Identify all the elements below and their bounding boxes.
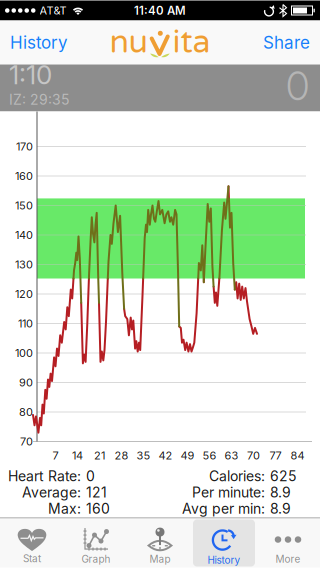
staticText: 121 xyxy=(86,485,107,500)
staticText: Share xyxy=(263,33,310,52)
button[interactable]: More xyxy=(256,518,320,567)
staticText: Max: xyxy=(48,501,81,516)
staticText: 90 xyxy=(19,376,33,388)
staticText: History xyxy=(10,33,68,52)
staticText: 150 xyxy=(15,199,33,211)
staticText: 8.9 xyxy=(270,501,291,516)
staticText: 70 xyxy=(247,449,260,461)
staticText: ita xyxy=(172,23,210,62)
staticText: 35 xyxy=(136,449,150,461)
staticText: 110 xyxy=(18,317,33,329)
staticText: Heart Rate: xyxy=(8,469,81,484)
staticText: 0 xyxy=(86,469,95,484)
button[interactable]: Share xyxy=(263,33,320,52)
staticText: Map xyxy=(149,554,170,564)
staticText: 170 xyxy=(16,140,33,152)
button[interactable]: Map xyxy=(128,518,192,567)
staticText: 140 xyxy=(15,229,33,241)
staticText: 56 xyxy=(202,449,216,461)
staticText: AT&T xyxy=(39,4,66,16)
button[interactable]: History xyxy=(0,33,68,52)
staticText: nu xyxy=(109,23,147,62)
staticText: 7 xyxy=(52,449,58,461)
staticText: 130 xyxy=(15,258,33,270)
staticText: Calories: xyxy=(209,469,265,484)
staticText: Per minute: xyxy=(192,485,265,500)
staticText: 21 xyxy=(94,449,105,461)
staticText: 63 xyxy=(224,449,238,461)
staticText: 160 xyxy=(86,501,110,516)
staticText: 84 xyxy=(290,449,304,461)
staticText: 8.9 xyxy=(270,485,291,500)
staticText: Avg per min: xyxy=(182,501,265,516)
staticText: Graph xyxy=(81,554,110,564)
staticText: More xyxy=(275,554,300,564)
staticText: 49 xyxy=(180,449,194,461)
staticText: 11:40 AM xyxy=(134,4,186,17)
staticText: 28 xyxy=(114,449,128,461)
staticText: History xyxy=(207,555,240,565)
staticText: 77 xyxy=(269,449,281,461)
staticText: 120 xyxy=(15,288,33,300)
button[interactable]: Stat xyxy=(0,518,64,567)
staticText: 70 xyxy=(20,435,33,447)
staticText: 14 xyxy=(72,449,83,461)
staticText: 625 xyxy=(270,469,297,484)
button[interactable]: Graph xyxy=(64,518,128,567)
button[interactable]: History xyxy=(192,518,256,567)
staticText: 80 xyxy=(19,406,33,418)
staticText: 100 xyxy=(15,347,33,359)
staticText: Stat xyxy=(23,553,41,564)
staticText: 0 xyxy=(286,65,309,107)
staticText: Average: xyxy=(22,485,81,500)
staticText: 160 xyxy=(15,170,33,182)
staticText: IZ: 29:35 xyxy=(9,92,70,107)
staticText: 42 xyxy=(158,449,172,461)
staticText: 1:10 xyxy=(9,61,52,89)
